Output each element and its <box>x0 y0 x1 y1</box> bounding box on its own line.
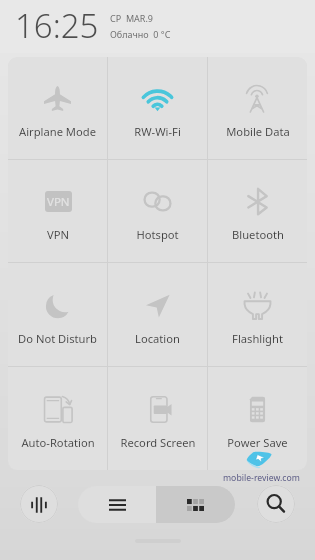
staticText: 16:25 <box>15 3 99 48</box>
button[interactable]: Search <box>257 485 295 523</box>
staticText: Mobile Data <box>226 124 290 139</box>
staticText: Do Not Disturb <box>18 331 97 346</box>
staticText: Flashlight <box>232 331 283 346</box>
button[interactable]: RW-Wi-Fi <box>108 57 207 159</box>
staticText: Record Screen <box>120 435 196 450</box>
staticText: Location <box>135 331 180 346</box>
button[interactable]: Location <box>108 263 207 366</box>
button[interactable]: Airplane Mode <box>8 57 107 159</box>
staticText: Hotspot <box>136 227 179 242</box>
staticText: Облачно 0 °C <box>110 28 171 40</box>
button[interactable]: Grid view <box>156 486 235 523</box>
staticText: Airplane Mode <box>19 124 96 139</box>
staticText: VPN <box>47 194 70 210</box>
button[interactable]: List view <box>78 486 156 523</box>
button[interactable]: Record Screen <box>108 367 207 470</box>
button[interactable]: Power Save <box>208 367 307 470</box>
staticText: Bluetooth <box>232 227 284 242</box>
button[interactable]: Auto-Rotation <box>8 367 107 470</box>
staticText: Auto-Rotation <box>21 435 95 450</box>
button[interactable]: Mobile Data <box>208 57 307 159</box>
button[interactable]: Do Not Disturb <box>8 263 107 366</box>
staticText: VPN <box>47 227 69 242</box>
staticText: Power Save <box>227 435 288 450</box>
staticText: СР MAR.9 <box>110 12 153 24</box>
button[interactable]: Hotspot <box>108 160 207 262</box>
staticText: mobile-review.com <box>223 472 300 484</box>
button[interactable]: Bluetooth <box>208 160 307 262</box>
button[interactable]: VPN <box>8 160 107 262</box>
staticText: RW-Wi-Fi <box>134 124 181 139</box>
button[interactable]: Flashlight <box>208 263 307 366</box>
button[interactable]: Voice assistant <box>20 485 58 523</box>
